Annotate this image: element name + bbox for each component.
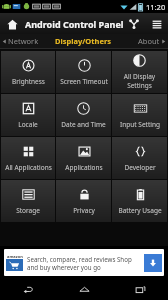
button[interactable]: Network (0, 34, 51, 48)
button[interactable]: Back (0, 279, 56, 300)
staticText: Screen Timeout (60, 77, 108, 86)
button[interactable]: About (116, 34, 168, 48)
button[interactable]: Developer (112, 137, 167, 179)
button[interactable]: Share (126, 16, 141, 31)
staticText: Applications (65, 163, 103, 172)
button[interactable]: Home (4, 16, 20, 32)
button[interactable]: Storage (1, 180, 55, 222)
staticText: 11:20 (146, 2, 166, 12)
staticText: Locale (18, 120, 38, 129)
staticText: Android Control Panel (25, 18, 124, 30)
button[interactable]: Locale (1, 94, 55, 136)
staticText: Privacy (73, 206, 95, 215)
staticText: Developer (124, 163, 156, 172)
button[interactable]: Applications (56, 137, 111, 179)
button[interactable]: Home (56, 279, 112, 300)
staticText: About (138, 36, 160, 46)
button[interactable]: Brightness (1, 51, 55, 93)
button[interactable]: Display/Others (51, 34, 116, 48)
staticText: and buy wherever you go (27, 263, 101, 271)
button[interactable]: All Display Settings (112, 51, 167, 93)
staticText: Input Setting (120, 120, 160, 129)
button[interactable]: amazon (4, 249, 164, 276)
staticText: Storage (16, 206, 40, 215)
staticText: Network (8, 36, 39, 46)
button[interactable]: Screen Timeout (56, 51, 111, 93)
button[interactable]: Privacy (56, 180, 111, 222)
button[interactable]: Battery Usage (112, 180, 167, 222)
staticText: All Display Settings (113, 72, 166, 90)
staticText: Search, compare, read reviews Shop (27, 255, 132, 263)
button[interactable]: Date and Time (56, 94, 111, 136)
staticText: amazon (7, 254, 23, 259)
button[interactable]: More options (149, 16, 164, 31)
button[interactable]: All Applications (1, 137, 55, 179)
staticText: Brightness (12, 77, 45, 86)
button[interactable]: Input Setting (112, 94, 167, 136)
staticText: All Applications (5, 163, 52, 172)
button[interactable]: Recents (112, 279, 168, 300)
staticText: Battery Usage (118, 206, 162, 215)
staticText: Date and Time (61, 120, 106, 129)
staticText: Display/Others (55, 36, 112, 46)
button[interactable]: Download (144, 254, 162, 272)
